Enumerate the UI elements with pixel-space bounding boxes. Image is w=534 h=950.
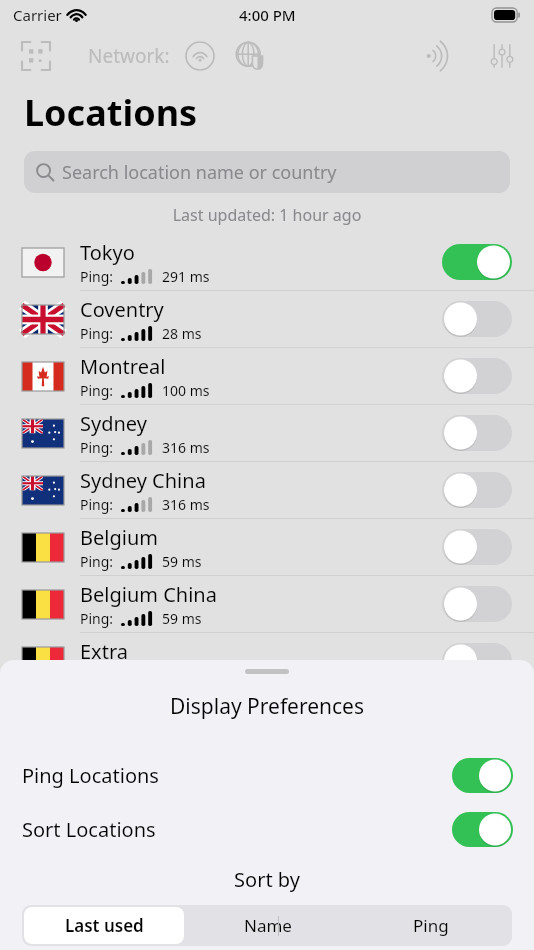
staticText: Ping: (80, 438, 114, 457)
button[interactable]: Secure network (230, 36, 270, 76)
staticText: Locations (24, 88, 198, 137)
staticText: Ping: (80, 267, 114, 286)
staticText: Display Preferences (0, 692, 534, 721)
button[interactable]: Ping (351, 907, 510, 944)
button[interactable]: Off (442, 643, 512, 679)
button[interactable]: Sydney (0, 405, 534, 461)
button[interactable]: On (452, 812, 513, 847)
staticText: Last used (65, 914, 144, 937)
staticText: 316 ms (162, 495, 210, 514)
button[interactable]: Off (442, 586, 512, 622)
staticText: Tokyo (80, 239, 135, 266)
staticText: Search location name or country (62, 160, 337, 185)
button[interactable]: Coventry (0, 291, 534, 347)
staticText: Sydney (80, 410, 147, 437)
staticText: Network: (88, 43, 170, 69)
button[interactable]: Off (442, 472, 512, 508)
staticText: Coventry (80, 296, 164, 323)
button[interactable]: Sydney China (0, 462, 534, 518)
staticText: Belgium China (80, 581, 217, 608)
button[interactable]: Off (442, 301, 512, 337)
staticText: Montreal (80, 353, 166, 380)
staticText: Carrier (13, 5, 62, 25)
staticText: Ping: (80, 552, 114, 571)
staticText: 4:00 PM (239, 5, 296, 25)
button[interactable]: On (442, 244, 512, 280)
staticText: Belgium (80, 524, 158, 551)
staticText: 28 ms (162, 324, 202, 343)
staticText: Ping Locations (22, 762, 452, 789)
button[interactable]: Tokyo (0, 234, 534, 290)
button[interactable]: Belgium (0, 519, 534, 575)
button[interactable]: Wi-Fi (180, 36, 220, 76)
staticText: Sort Locations (22, 816, 452, 843)
button[interactable]: On (452, 758, 513, 793)
staticText: Name (244, 914, 292, 937)
staticText: 316 ms (162, 438, 210, 457)
staticText: Extra (80, 638, 128, 665)
staticText: Sydney China (80, 467, 206, 494)
button[interactable]: Search location name or country (24, 151, 510, 193)
button[interactable]: Belgium China (0, 576, 534, 632)
button[interactable]: Scan QR code (14, 34, 58, 78)
button[interactable]: Extra (0, 633, 534, 689)
staticText: Ping: (80, 324, 114, 343)
button[interactable]: Broadcast (416, 34, 460, 78)
button[interactable]: Off (442, 415, 512, 451)
staticText: Sort by (0, 866, 534, 893)
staticText: 100 ms (162, 381, 210, 400)
staticText: Ping: (80, 495, 114, 514)
button[interactable]: Montreal (0, 348, 534, 404)
staticText: Ping: (80, 609, 114, 628)
button[interactable]: Off (442, 358, 512, 394)
staticText: 291 ms (162, 267, 210, 286)
staticText: 59 ms (162, 552, 202, 571)
staticText: 59 ms (162, 609, 202, 628)
button[interactable]: Name (188, 907, 347, 944)
staticText: Ping (413, 914, 449, 937)
button[interactable]: Last used (24, 907, 184, 944)
button[interactable]: Off (442, 529, 512, 565)
button[interactable]: Settings (480, 34, 524, 78)
button[interactable]: Sort Locations (0, 810, 534, 848)
staticText: Ping: (80, 381, 114, 400)
staticText: Last updated: 1 hour ago (0, 204, 534, 226)
button[interactable]: Ping Locations (0, 756, 534, 794)
